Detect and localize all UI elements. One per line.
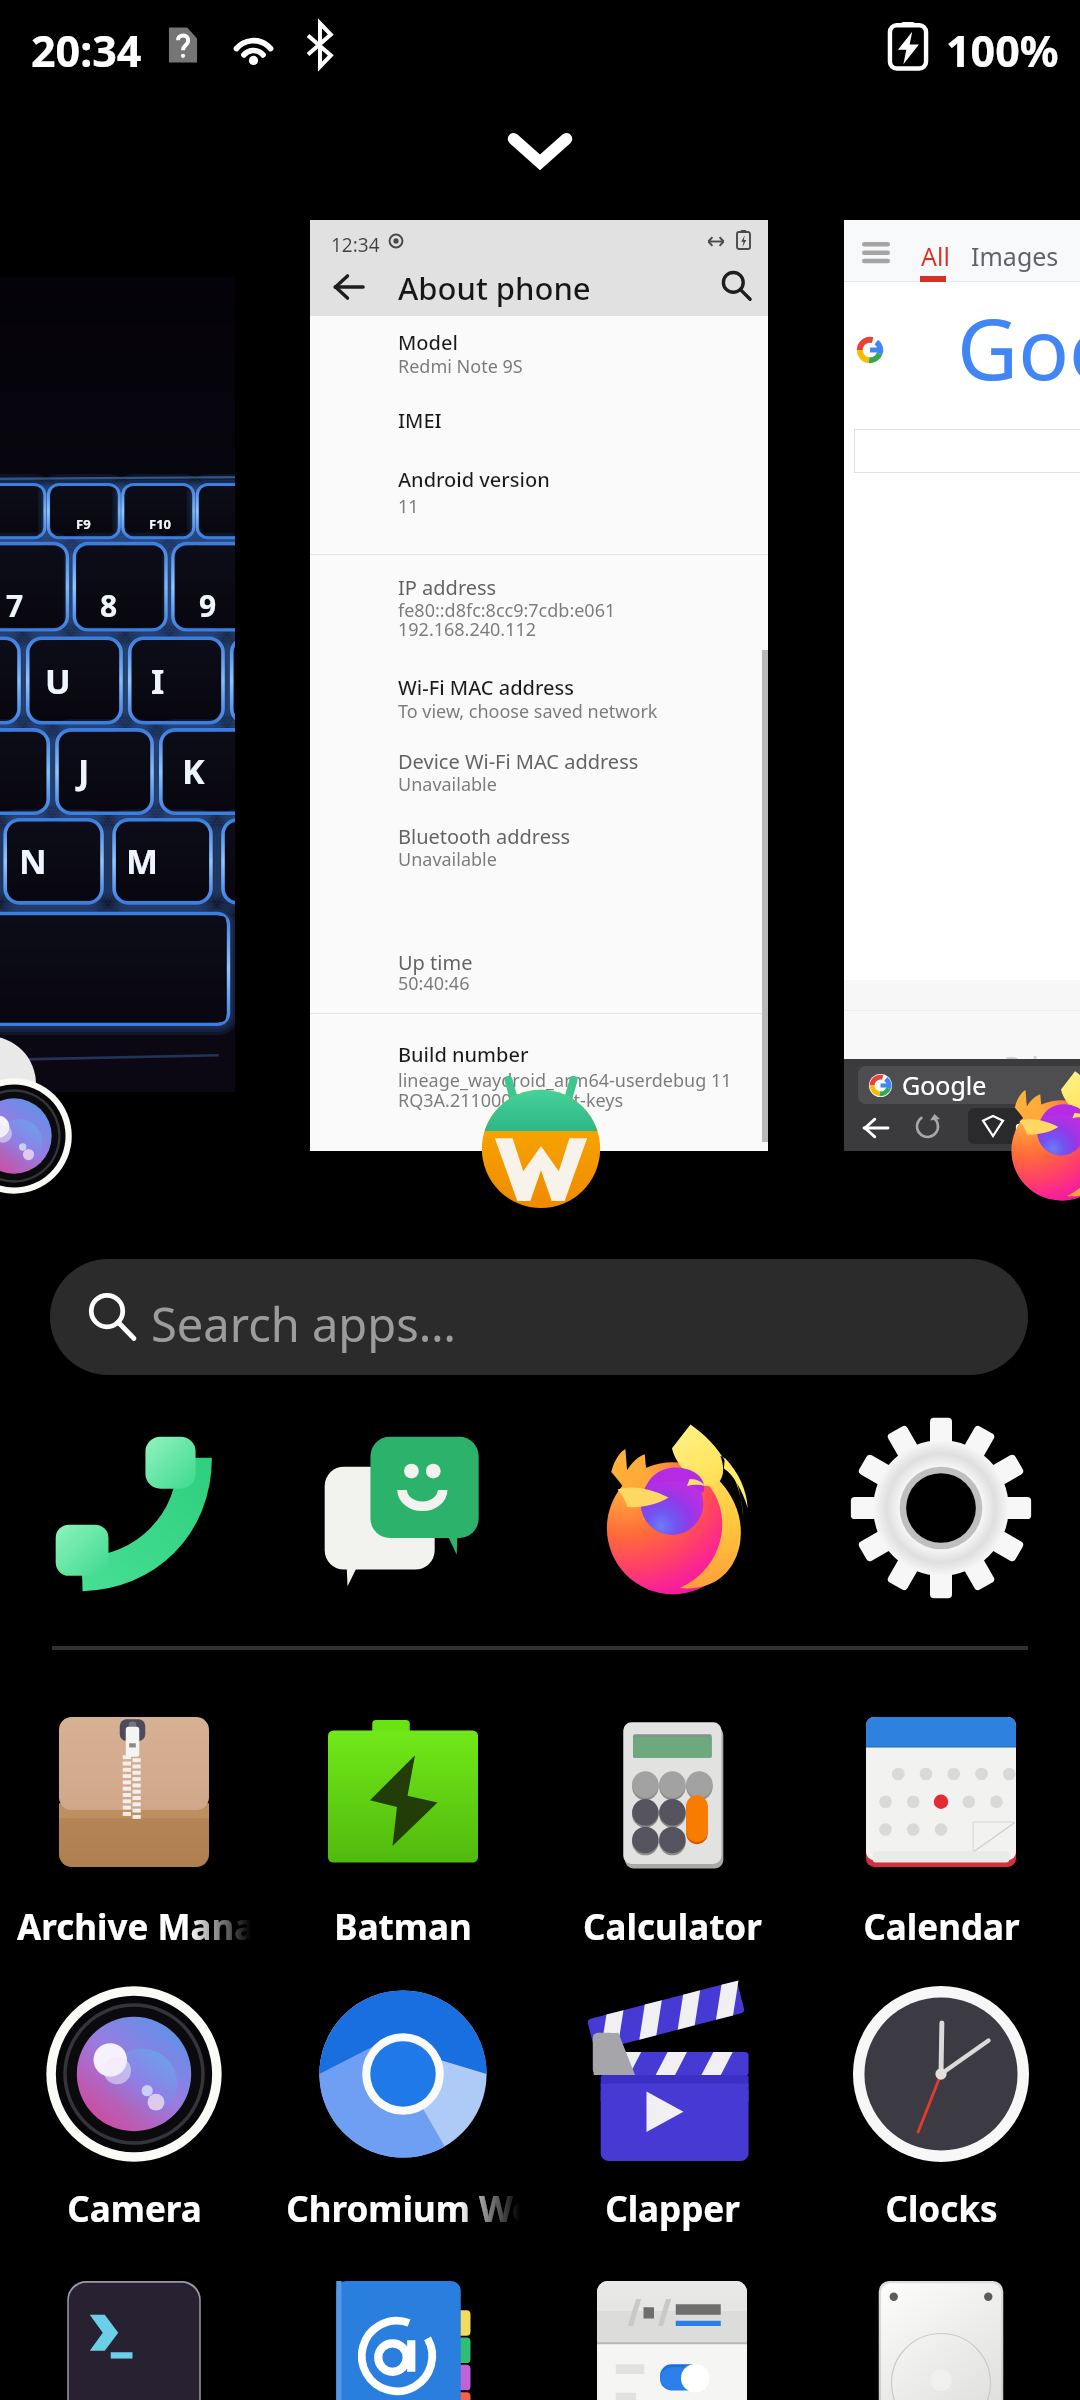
button[interactable]: Messages <box>310 1415 496 1601</box>
button[interactable]: Clapper <box>538 1980 806 2260</box>
staticText: Chromium Web Browser <box>286 2185 520 2233</box>
button[interactable]: App <box>0 2262 268 2400</box>
staticText: Batman <box>334 1903 472 1951</box>
button[interactable]: Calculator <box>538 1698 806 1978</box>
button[interactable]: Phone <box>41 1415 227 1601</box>
staticText: Clapper <box>605 2185 740 2233</box>
staticText: K <box>182 748 205 794</box>
button[interactable]: App <box>269 2262 537 2400</box>
staticText: 8 <box>100 585 118 626</box>
staticText: 100% <box>946 21 1059 80</box>
staticText: RQ3A.211000000-test-keys <box>398 1088 624 1113</box>
staticText: N <box>19 838 47 884</box>
staticText: 7 <box>6 585 24 626</box>
staticText: Device Wi-Fi MAC address <box>398 748 639 775</box>
staticText: Search apps… <box>151 1292 456 1356</box>
staticText: IP address <box>398 574 497 601</box>
staticText: Google <box>902 1068 987 1102</box>
staticText: Unavailable <box>398 772 497 797</box>
button[interactable]: Settings <box>848 1415 1034 1601</box>
button[interactable]: Batman <box>269 1698 537 1978</box>
staticText: Archive Manager <box>17 1903 251 1951</box>
staticText: 11 <box>398 494 419 519</box>
button[interactable]: Camera recent task <box>0 277 235 1092</box>
staticText: IMEI <box>398 407 442 434</box>
staticText: J <box>78 748 90 794</box>
staticText: Up time <box>398 949 473 976</box>
staticText: Bluetooth address <box>398 823 571 850</box>
staticText: Goo <box>957 290 1080 404</box>
staticText: To view, choose saved network <box>398 699 658 724</box>
button[interactable]: Chromium Web Browser <box>269 1980 537 2260</box>
staticText: Camera <box>67 2185 202 2233</box>
staticText: 50:40:46 <box>398 971 470 996</box>
staticText: 20:34 <box>31 21 142 80</box>
button[interactable]: Clocks <box>807 1980 1075 2260</box>
staticText: All <box>921 239 950 273</box>
staticText: Images <box>971 239 1059 273</box>
staticText: lineage_waydroid_arm64-userdebug 11 <box>398 1068 732 1093</box>
staticText: Clocks <box>885 2185 998 2233</box>
staticText: Calculator <box>583 1903 762 1951</box>
button[interactable]: Calendar <box>807 1698 1075 1978</box>
staticText: 192.168.240.112 <box>398 617 537 642</box>
button[interactable]: App <box>538 2262 806 2400</box>
staticText: I <box>151 658 165 704</box>
button[interactable]: Search apps… <box>50 1259 1028 1375</box>
staticText: F9 <box>76 515 91 533</box>
staticText: Model <box>398 329 458 356</box>
button[interactable]: Settings recent task <box>310 220 768 1151</box>
staticText: 12:34 <box>331 232 380 258</box>
staticText: 9 <box>199 585 217 626</box>
staticText: a <box>1044 1111 1057 1141</box>
staticText: U <box>45 658 71 704</box>
button[interactable]: Expand recents <box>507 132 573 170</box>
staticText: Android version <box>398 466 550 493</box>
staticText: M <box>126 838 159 884</box>
staticText: About phone <box>398 267 591 309</box>
button[interactable]: Firefox <box>579 1415 765 1601</box>
staticText: fe80::d8fc:8cc9:7cdb:e061 <box>398 598 616 623</box>
staticText: F10 <box>149 515 172 533</box>
staticText: Wi-Fi MAC address <box>398 674 574 701</box>
staticText: Unavailable <box>398 847 497 872</box>
staticText: Calendar <box>863 1903 1020 1951</box>
button[interactable]: Camera <box>0 1980 268 2260</box>
button[interactable]: App <box>807 2262 1075 2400</box>
staticText: Redmi Note 9S <box>398 354 523 379</box>
button[interactable]: Archive Manager <box>0 1698 268 1978</box>
staticText: Build number <box>398 1041 529 1068</box>
button[interactable]: Firefox recent task <box>844 220 1080 1151</box>
staticText: Privacy <box>1004 1048 1080 1085</box>
